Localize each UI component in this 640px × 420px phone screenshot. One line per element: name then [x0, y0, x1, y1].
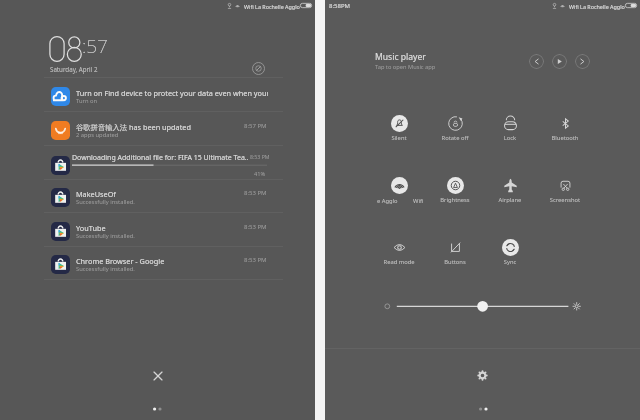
staticText: 8:53 PM	[250, 153, 270, 160]
button[interactable]: Play	[552, 54, 567, 69]
button[interactable]: Sync	[486, 239, 534, 271]
button[interactable]: Rotate off	[431, 115, 479, 147]
button[interactable]: Music player	[325, 46, 640, 78]
button[interactable]: Downloading Additional file for: FIFA 15…	[0, 149, 315, 183]
staticText: Silent	[375, 134, 423, 142]
staticText: Read mode	[375, 258, 423, 266]
button[interactable]: Bluetooth	[541, 115, 589, 147]
staticText: Turn on	[76, 97, 98, 105]
button[interactable]: MakeUseOf	[0, 182, 315, 216]
staticText: Successfully installed.	[76, 198, 135, 206]
button[interactable]: Silent	[375, 115, 423, 147]
staticText: Turn on Find device to protect your data…	[76, 88, 268, 98]
staticText: Wifi	[413, 197, 424, 205]
button[interactable]: Chrome Browser - Google	[0, 249, 315, 283]
staticText: Wifi La Rochelle Agglo	[569, 3, 625, 10]
button[interactable]: Next	[575, 54, 590, 69]
button[interactable]: 谷歌拼音输入法 has been updated	[0, 115, 315, 149]
button[interactable]	[375, 177, 423, 209]
button[interactable]: YouTube	[0, 216, 315, 250]
staticText: Airplane	[486, 196, 534, 204]
staticText: Successfully installed.	[76, 232, 135, 240]
button[interactable]	[325, 296, 640, 317]
staticText: Sync	[486, 258, 534, 266]
staticText: 8:58PM	[329, 2, 350, 10]
staticText: Lock	[486, 134, 534, 142]
staticText: Wifi La Rochelle Agglo	[244, 3, 300, 10]
staticText: Buttons	[431, 258, 479, 266]
button[interactable]: Turn on Find device to protect your data…	[0, 81, 315, 115]
staticText: Successfully installed.	[76, 265, 135, 273]
button[interactable]: Do not disturb	[248, 58, 269, 79]
staticText: Chrome Browser - Google	[76, 256, 268, 266]
staticText: 8:53 PM	[244, 256, 267, 264]
staticText: Brightness	[431, 196, 479, 204]
staticText: Saturday, April 2	[50, 65, 98, 73]
staticText: Music player	[375, 51, 426, 63]
button[interactable]: Previous	[529, 54, 544, 69]
button[interactable]: Airplane	[486, 177, 534, 209]
button[interactable]: Lock	[486, 115, 534, 147]
staticText: MakeUseOf	[76, 189, 268, 199]
staticText: 8:57 PM	[244, 122, 267, 130]
staticText: Rotate off	[431, 134, 479, 142]
staticText: Screenshot	[541, 196, 589, 204]
button[interactable]: Read mode	[375, 239, 423, 271]
staticText: YouTube	[76, 223, 268, 233]
button[interactable]: Clear all notifications	[146, 364, 169, 387]
staticText: 8:53 PM	[244, 189, 267, 197]
staticText: Tap to open Music app	[375, 63, 436, 71]
staticText: Bluetooth	[541, 134, 589, 142]
button[interactable]: Screenshot	[541, 177, 589, 209]
staticText: 2 apps updated	[76, 131, 119, 139]
staticText: 谷歌拼音输入法 has been updated	[76, 122, 268, 132]
button[interactable]: Settings	[472, 365, 493, 386]
staticText: Downloading Additional file for: FIFA 15…	[72, 153, 248, 163]
staticText: 8:53 PM	[244, 223, 267, 231]
button[interactable]: Brightness	[431, 177, 479, 209]
button[interactable]: Buttons	[431, 239, 479, 271]
staticText: 41%	[254, 170, 266, 178]
staticText: e Agglo	[377, 197, 398, 205]
staticText: :57	[82, 33, 108, 59]
